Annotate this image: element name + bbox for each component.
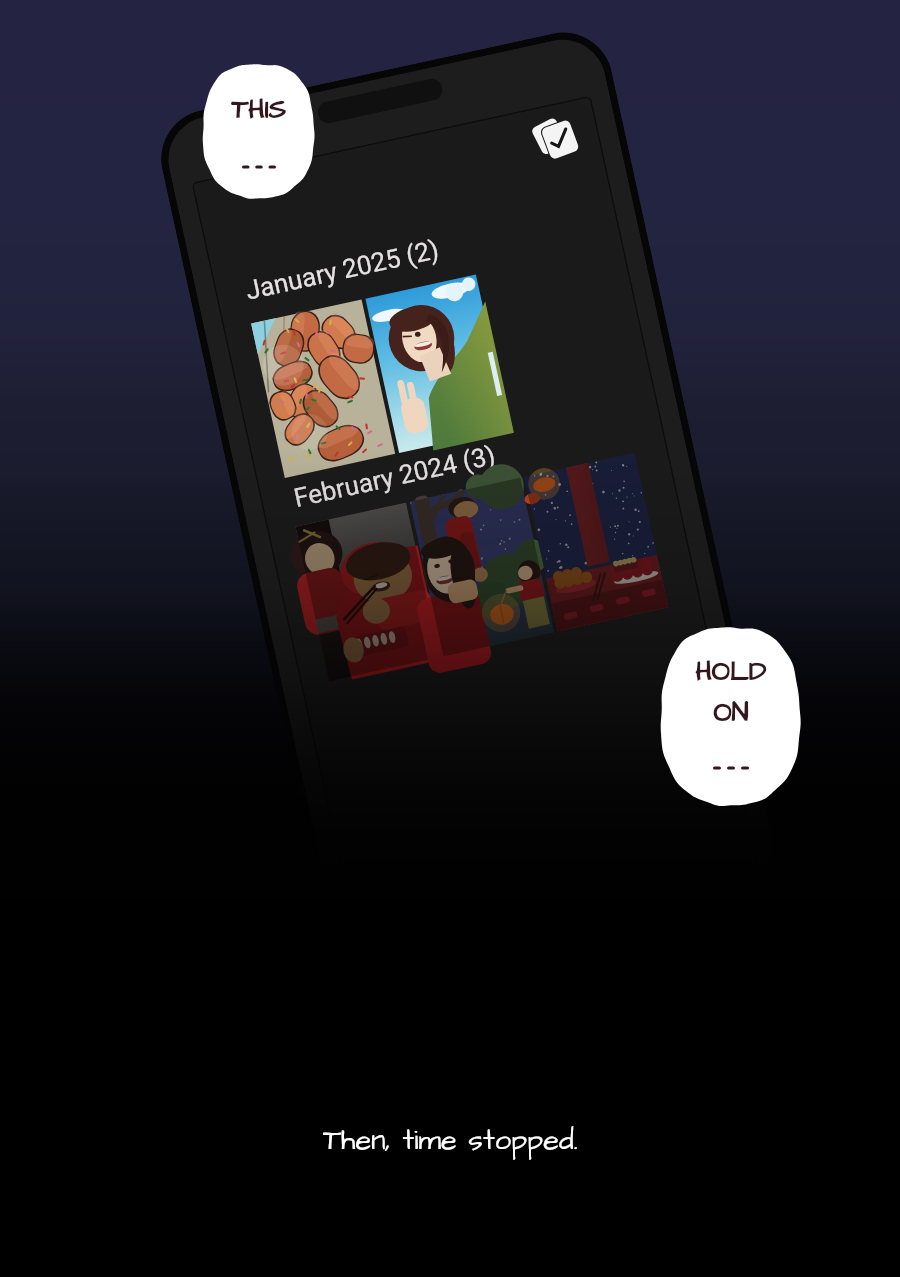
staticText: January 2025 (2): [243, 234, 442, 306]
button[interactable]: Photo 3: [295, 503, 440, 681]
button[interactable]: Photo 4: [410, 478, 554, 656]
staticText: THIS: [231, 91, 286, 129]
staticText: ON: [713, 694, 749, 732]
button[interactable]: February 2024 (3): [291, 438, 499, 515]
staticText: HOLD: [695, 653, 766, 691]
button[interactable]: Photo 1: [251, 299, 395, 478]
button[interactable]: Select all: [527, 109, 584, 166]
staticText: Then, time stopped.: [323, 1120, 578, 1160]
staticText: February 2024 (3): [291, 440, 499, 513]
button[interactable]: Photo 5: [524, 453, 668, 631]
button[interactable]: Photo 2: [365, 274, 510, 453]
button[interactable]: January 2025 (2): [242, 232, 442, 307]
